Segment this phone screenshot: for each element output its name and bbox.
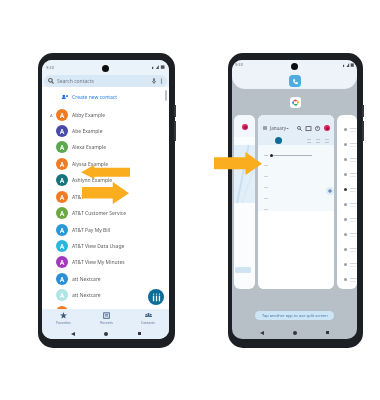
button[interactable]: A: [42, 271, 169, 287]
button[interactable]: [56, 306, 68, 318]
button[interactable]: Search contacts: [44, 75, 167, 87]
button[interactable]: Recent apps: [134, 328, 145, 339]
button[interactable]: Home: [289, 327, 300, 338]
button[interactable]: Back: [67, 328, 78, 339]
staticText: att Nextcare: [72, 276, 101, 283]
button[interactable]: A: [42, 123, 169, 139]
staticText: Abe Example: [72, 128, 103, 135]
staticText: A: [60, 160, 65, 169]
staticText: A: [50, 113, 53, 118]
button[interactable]: Photos app: [290, 97, 301, 108]
staticText: Create new contact: [72, 94, 118, 101]
staticText: A: [60, 143, 65, 152]
staticText: Alyssa Example: [72, 161, 109, 168]
button[interactable]: Dial pad: [148, 289, 164, 305]
staticText: A: [60, 291, 65, 300]
staticText: A: [60, 127, 65, 136]
button[interactable]: Tap another app to use split screen: [255, 311, 334, 320]
staticText: Favorites: [56, 320, 71, 325]
button[interactable]: A: [42, 222, 169, 238]
staticText: A: [60, 242, 65, 251]
button[interactable]: Create event: [326, 187, 334, 195]
staticText: Abby Example: [72, 112, 106, 119]
button[interactable]: A: [42, 205, 169, 221]
button[interactable]: Phone app: [289, 75, 301, 87]
button[interactable]: [234, 115, 255, 289]
button[interactable]: January: [258, 115, 334, 289]
staticText: Alexa Example: [72, 144, 107, 151]
button[interactable]: Back: [256, 327, 267, 338]
button[interactable]: Home: [100, 328, 111, 339]
button[interactable]: A: [42, 287, 169, 303]
staticText: AT&T View My Minutes: [72, 259, 125, 266]
staticText: AT&T: [72, 194, 84, 201]
staticText: A: [60, 176, 65, 185]
staticText: Tap another app to use split screen: [262, 313, 328, 318]
staticText: Search contacts: [57, 78, 94, 85]
staticText: A: [60, 193, 65, 202]
button[interactable]: A: [42, 156, 169, 172]
button[interactable]: Favorites: [42, 309, 85, 327]
button[interactable]: Recent apps: [322, 327, 333, 338]
staticText: Recents: [100, 320, 113, 325]
staticText: att Nextcare: [72, 292, 101, 299]
button[interactable]: Contacts: [127, 309, 169, 327]
button[interactable]: Recents: [85, 309, 127, 327]
button[interactable]: A: [42, 107, 169, 123]
button[interactable]: A: [42, 238, 169, 254]
staticText: 9:30: [235, 62, 243, 67]
staticText: A: [60, 209, 65, 218]
staticText: A: [60, 258, 65, 267]
staticText: A: [60, 275, 65, 284]
button[interactable]: A: [42, 139, 169, 155]
staticText: A: [60, 111, 65, 120]
button[interactable]: A: [42, 189, 169, 205]
staticText: 9:30: [46, 65, 54, 70]
button[interactable]: [337, 115, 357, 289]
staticText: Contacts: [141, 320, 155, 325]
staticText: January: [270, 125, 286, 131]
staticText: AT&T View Data Usage: [72, 243, 125, 250]
button[interactable]: Create new contact: [42, 89, 169, 105]
staticText: A: [60, 226, 65, 235]
staticText: AT&T Pay My Bill: [72, 227, 111, 234]
staticText: Ashlynn Example: [72, 177, 113, 184]
button[interactable]: A: [42, 254, 169, 270]
staticText: AT&T Customer Service: [72, 210, 126, 217]
button[interactable]: A: [42, 172, 169, 188]
